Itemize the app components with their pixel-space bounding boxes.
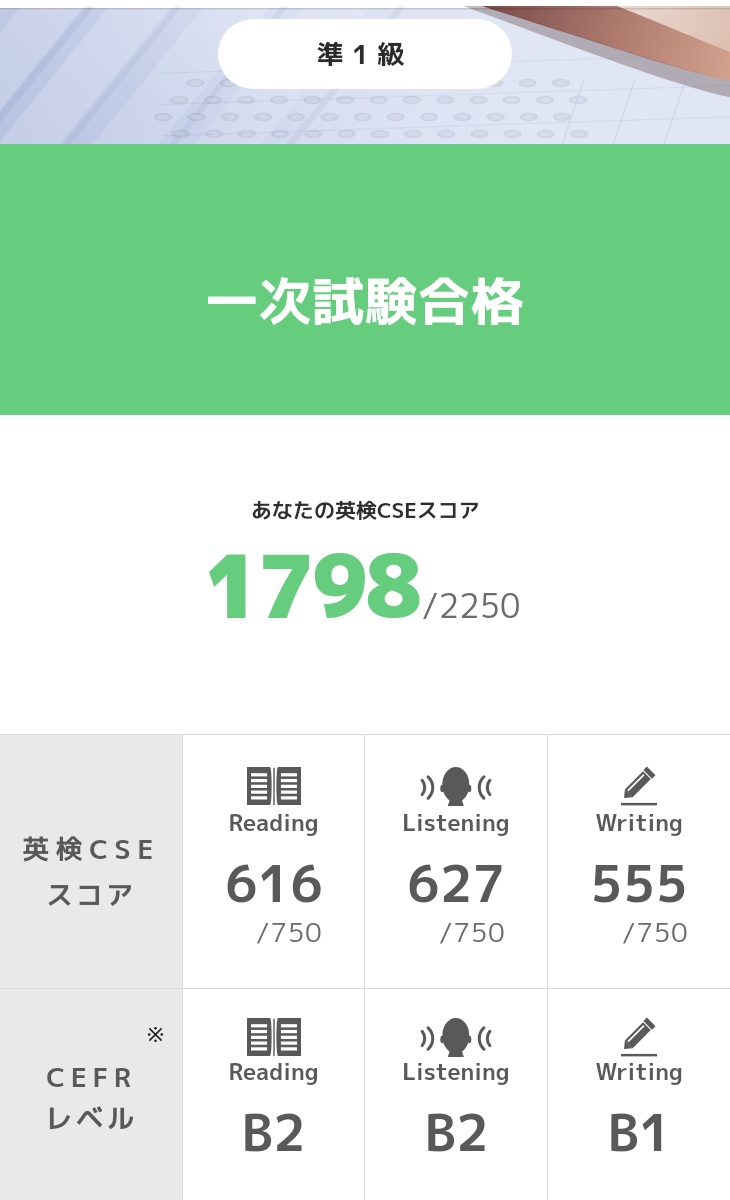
staticText: Writing [595,1055,683,1087]
button[interactable]: 準1級 [218,19,512,89]
button[interactable]: Writing [548,989,730,1200]
button[interactable]: CEFR [0,989,182,1200]
staticText: Reading [228,806,319,838]
button[interactable]: Listening [365,989,547,1200]
staticText: /750 [622,913,689,951]
staticText: あなたの英検CSEスコア [251,495,480,524]
staticText: /750 [256,913,323,951]
staticText: 616 [225,847,323,918]
button[interactable]: Listening [365,735,547,988]
staticText: 555 [590,847,688,918]
staticText: 一次試験合格 [206,264,525,337]
staticText: CEFR [46,1058,137,1096]
staticText: B1 [607,1096,672,1167]
button[interactable]: Reading [183,989,364,1200]
staticText: Listening [402,1055,510,1087]
staticText: 627 [407,847,505,918]
staticText: Writing [595,806,683,838]
button[interactable]: Reading [183,735,364,988]
staticText: B2 [424,1096,489,1167]
button[interactable]: Writing [548,735,730,988]
staticText: 準1級 [317,35,413,73]
staticText: /2250 [422,583,521,629]
staticText: Reading [228,1055,319,1087]
button[interactable]: 英検CSE [0,735,182,988]
staticText: B2 [241,1096,306,1167]
staticText: /750 [439,913,506,951]
staticText: 英検CSE [22,830,160,868]
staticText: 1798 [204,526,420,646]
staticText: スコア [46,876,136,914]
staticText: レベル [45,1099,138,1137]
staticText: Listening [402,806,510,838]
